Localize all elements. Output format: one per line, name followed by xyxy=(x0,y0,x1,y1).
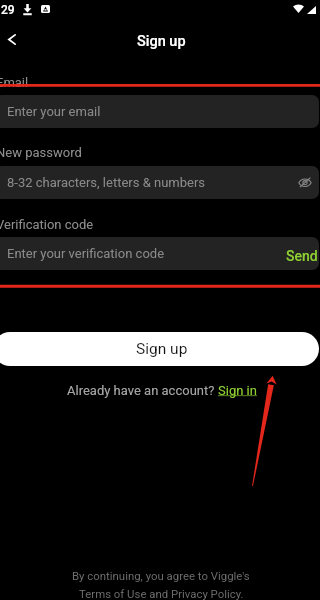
staticText: Verification code xyxy=(0,217,94,232)
staticText: Terms of Use and Privacy Policy. xyxy=(79,587,244,600)
staticText: Send xyxy=(286,248,318,264)
button[interactable]: 8-32 characters, letters & numbers xyxy=(0,166,319,199)
staticText: Already have an account? xyxy=(67,383,218,398)
button[interactable]: Send xyxy=(286,246,318,262)
staticText: Sign up xyxy=(137,33,186,50)
staticText: 29 xyxy=(1,3,15,17)
staticText: New password xyxy=(0,145,82,160)
button[interactable]: Enter your email xyxy=(0,95,319,128)
staticText: Enter your verification code xyxy=(7,246,165,261)
button[interactable]: Show password xyxy=(295,172,317,194)
button[interactable]: Back xyxy=(0,20,24,58)
button[interactable]: Sign up xyxy=(0,332,319,366)
staticText: Sign up xyxy=(136,340,188,358)
staticText: Sign in xyxy=(218,383,257,398)
button[interactable]: Enter your verification code xyxy=(0,237,319,270)
staticText: 8-32 characters, letters & numbers xyxy=(7,175,206,190)
staticText: Email xyxy=(0,75,29,90)
staticText: Enter your email xyxy=(7,104,101,119)
button[interactable]: Sign in xyxy=(218,383,257,398)
staticText: By continuing, you agree to Viggle's xyxy=(72,569,250,582)
